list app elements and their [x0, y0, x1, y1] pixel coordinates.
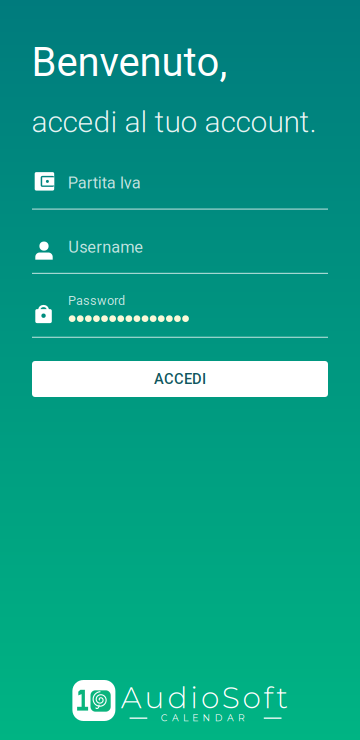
staticText: Password	[68, 293, 125, 308]
button[interactable]: Partita Iva	[32, 168, 328, 209]
staticText: Username	[68, 237, 143, 257]
staticText: C A L E N D A R	[161, 712, 245, 724]
button[interactable]: Username	[32, 232, 328, 273]
staticText: Partita Iva	[68, 173, 141, 192]
staticText: ACCEDI	[154, 370, 206, 388]
staticText: accedi al tuo account.	[31, 104, 316, 140]
staticText: Benvenuto,	[31, 39, 227, 86]
button[interactable]: Password	[32, 292, 328, 337]
button[interactable]: ACCEDI	[32, 361, 328, 397]
staticText: AudioSoft	[121, 680, 288, 716]
